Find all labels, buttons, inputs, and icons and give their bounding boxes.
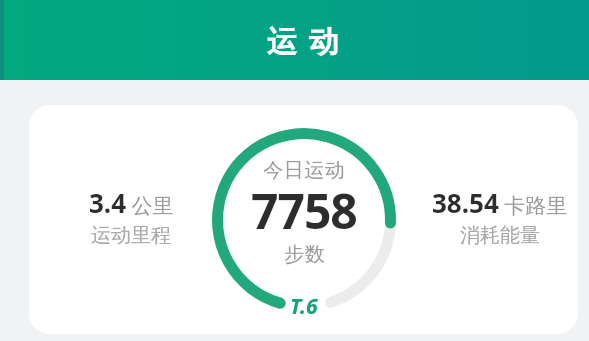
button[interactable]: 运 动 bbox=[0, 0, 589, 80]
staticText: 7758 bbox=[251, 178, 357, 243]
staticText: 38.54 卡路里 bbox=[432, 185, 568, 220]
staticText: 步数 bbox=[284, 242, 325, 267]
staticText: 运动里程 bbox=[91, 223, 171, 248]
staticText: T.6 bbox=[290, 292, 318, 321]
staticText: 消耗能量 bbox=[460, 223, 540, 248]
staticText: 运 动 bbox=[267, 20, 341, 61]
button[interactable] bbox=[29, 105, 578, 334]
staticText: 今日运动 bbox=[263, 158, 345, 183]
staticText: 3.4 公里 bbox=[89, 185, 174, 220]
